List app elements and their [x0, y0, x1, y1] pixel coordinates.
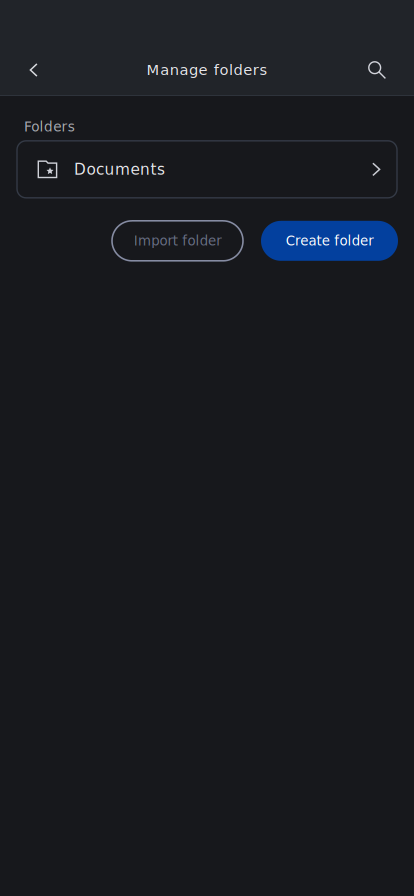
button[interactable]: Import folder — [112, 221, 243, 261]
staticText: Import folder — [134, 233, 221, 249]
button[interactable]: Create folder — [261, 221, 398, 261]
staticText: Create folder — [286, 233, 373, 249]
staticText: Manage folders — [147, 61, 267, 79]
button[interactable]: Search — [355, 48, 399, 92]
button[interactable]: Documents — [17, 141, 397, 198]
staticText: Folders — [24, 119, 75, 135]
staticText: Documents — [74, 160, 165, 178]
button[interactable]: Back — [12, 48, 56, 92]
